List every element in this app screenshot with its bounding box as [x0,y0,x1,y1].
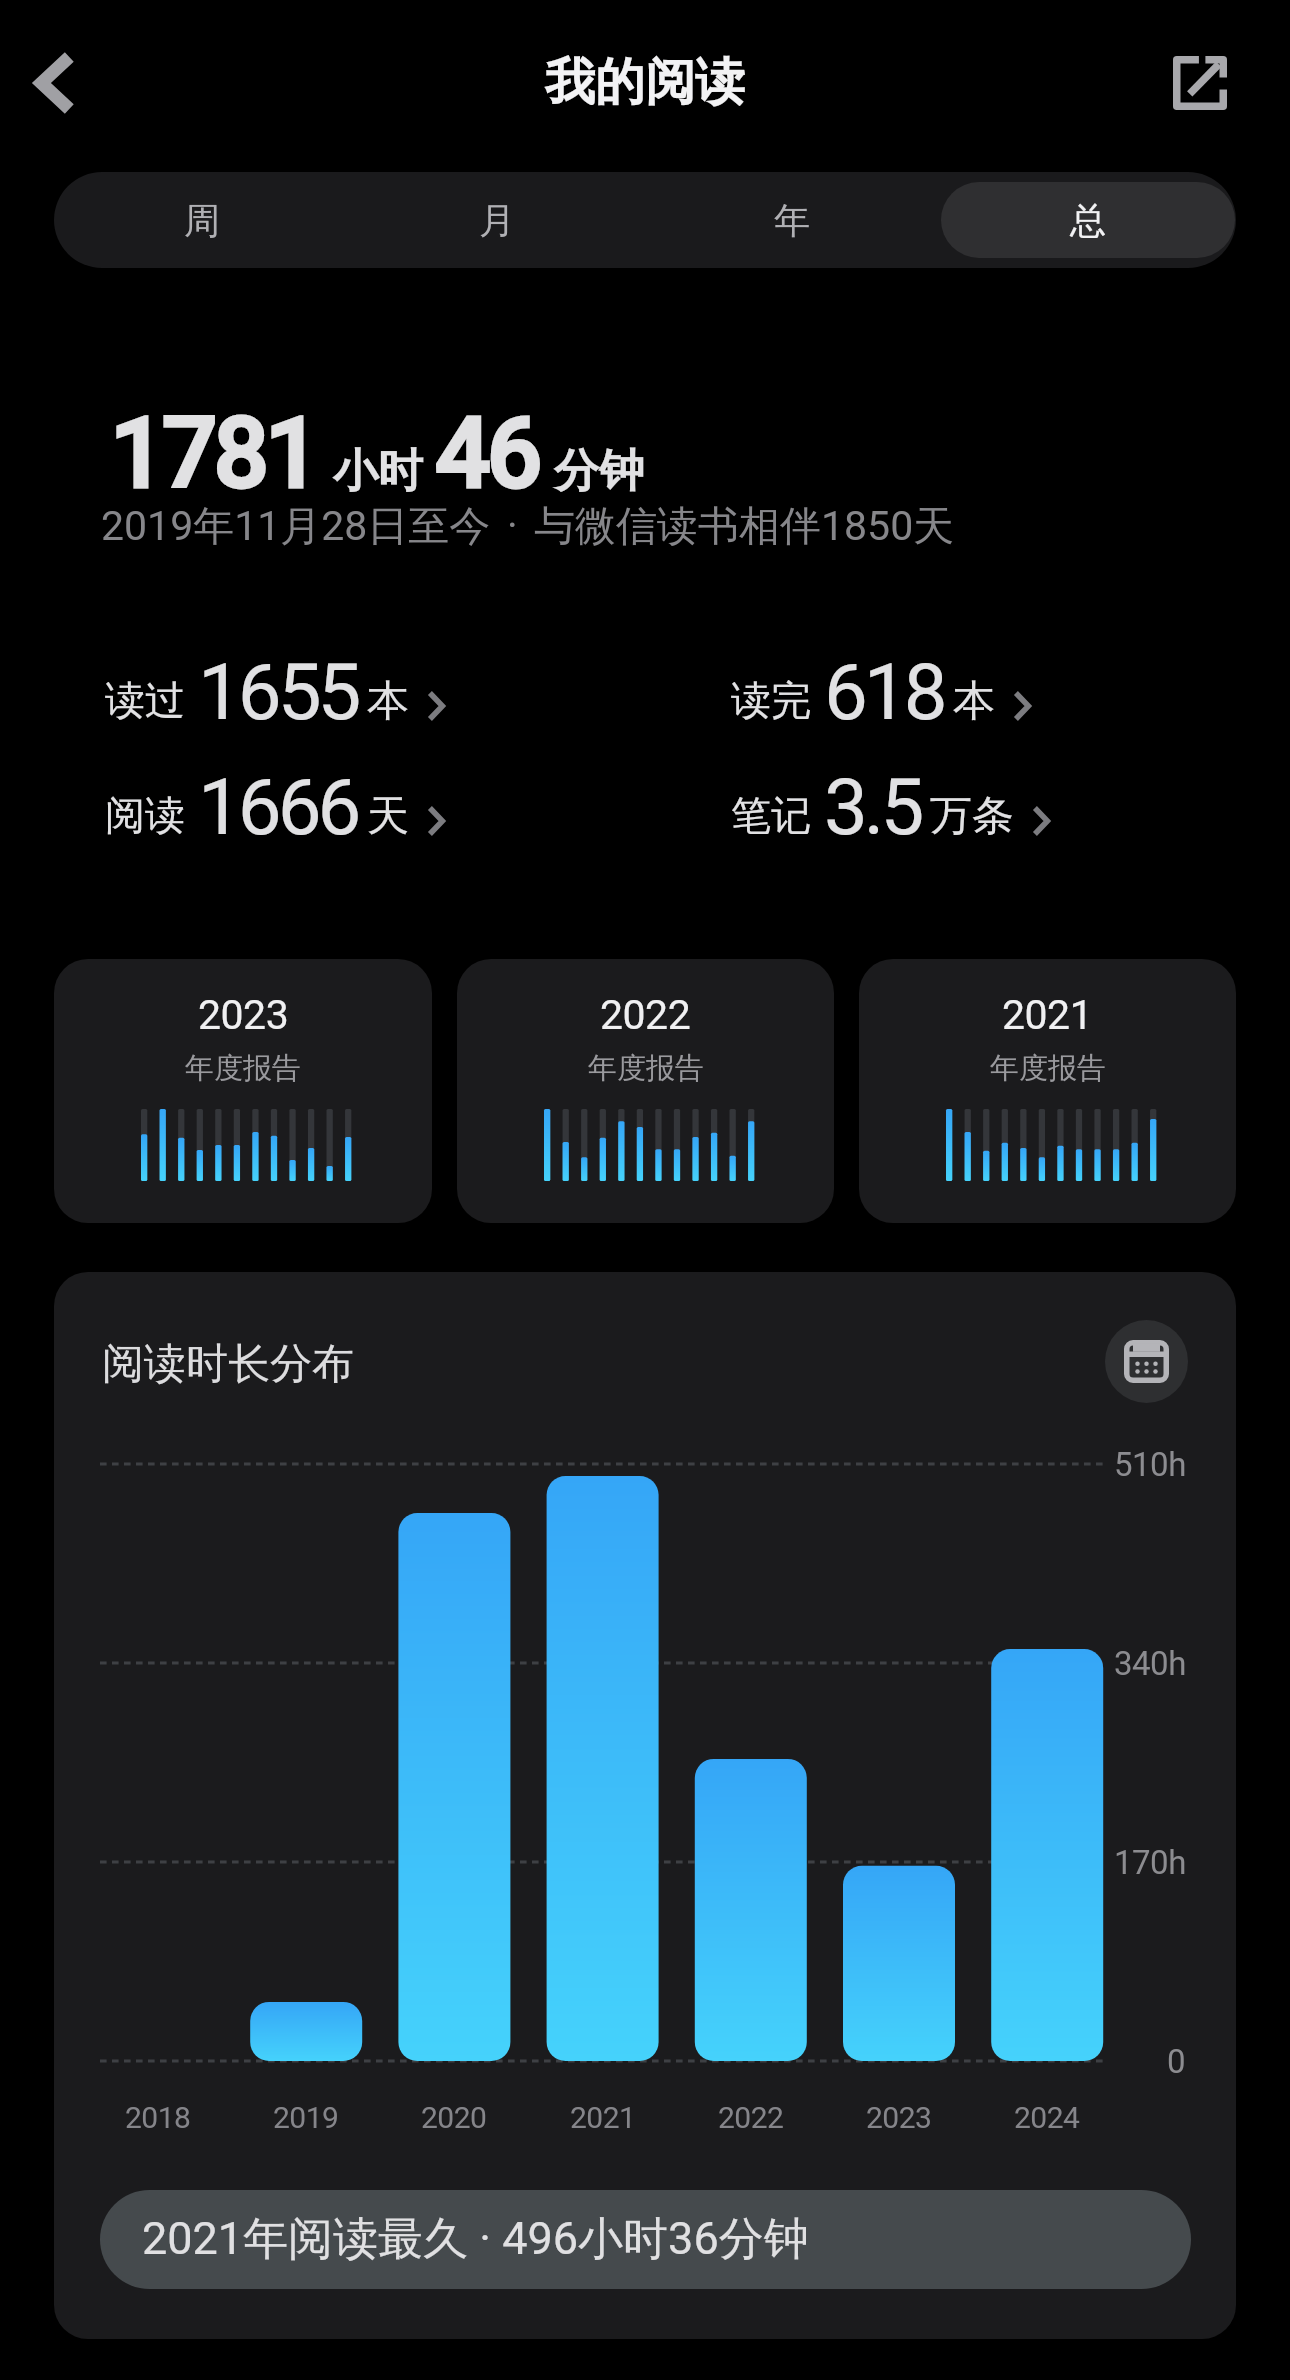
staticText: 2021 [570,2100,636,2135]
staticText: 2022 [718,2100,784,2135]
button[interactable]: 总 [941,182,1235,258]
staticText: 年度报告 [990,1050,1106,1087]
button[interactable]: 2023 [54,959,432,1223]
staticText: 分钟 [554,443,644,500]
staticText: 2019年11月28日至今 [101,501,491,553]
staticText: 万条 [930,790,1014,843]
staticText: 周 [184,198,220,243]
button[interactable]: 笔记 [731,762,1049,853]
staticText: 1655 [198,647,358,738]
button[interactable]: 读过 [105,647,731,738]
button[interactable]: 月 [350,182,643,258]
staticText: · [507,501,518,549]
staticText: 2022 [600,991,691,1039]
staticText: 年 [774,198,810,243]
staticText: 2024 [1014,2100,1080,2135]
staticText: 170h [1114,1843,1186,1882]
staticText: 与微信读书相伴1850天 [534,501,955,553]
staticText: 2019 [273,2100,339,2135]
button[interactable]: 年 [645,182,939,258]
staticText: 2018 [125,2100,191,2135]
staticText: 46 [435,396,539,511]
button[interactable]: 2022 [457,959,834,1223]
button[interactable]: Back [0,28,110,138]
staticText: 2021 [1002,991,1093,1039]
staticText: 笔记 [731,790,811,840]
staticText: 2020 [421,2100,487,2135]
staticText: 0 [1167,2042,1186,2081]
staticText: 阅读 [105,790,185,840]
staticText: 340h [1114,1644,1186,1683]
staticText: 年度报告 [185,1050,301,1087]
staticText: 阅读时长分布 [102,1338,354,1391]
staticText: 510h [1114,1445,1186,1484]
button[interactable]: 读完 [731,647,1030,738]
staticText: 2021年阅读最久 · 496小时36分钟 [142,2211,809,2268]
staticText: 2023 [198,991,289,1039]
button[interactable]: 2021 [859,959,1236,1223]
staticText: 总 [1070,198,1106,243]
staticText: 年度报告 [588,1050,704,1087]
staticText: 1781 [110,396,317,511]
staticText: 读过 [105,675,185,725]
staticText: 读完 [731,675,811,725]
staticText: 1666 [198,762,358,853]
staticText: 天 [367,790,409,843]
staticText: 小时 [333,443,423,500]
staticText: 3.5 [824,762,921,853]
button[interactable]: 周 [55,182,348,258]
button[interactable]: Share [1150,33,1250,133]
staticText: 我的阅读 [545,51,745,114]
button[interactable]: 2021年阅读最久 · 496小时36分钟 [100,2190,1191,2289]
staticText: 618 [824,647,944,738]
staticText: 月 [479,198,515,243]
staticText: 本 [953,675,995,728]
staticText: 2023 [866,2100,932,2135]
button[interactable]: 阅读 [105,762,731,853]
staticText: 本 [367,675,409,728]
button[interactable]: Calendar [1105,1320,1188,1403]
